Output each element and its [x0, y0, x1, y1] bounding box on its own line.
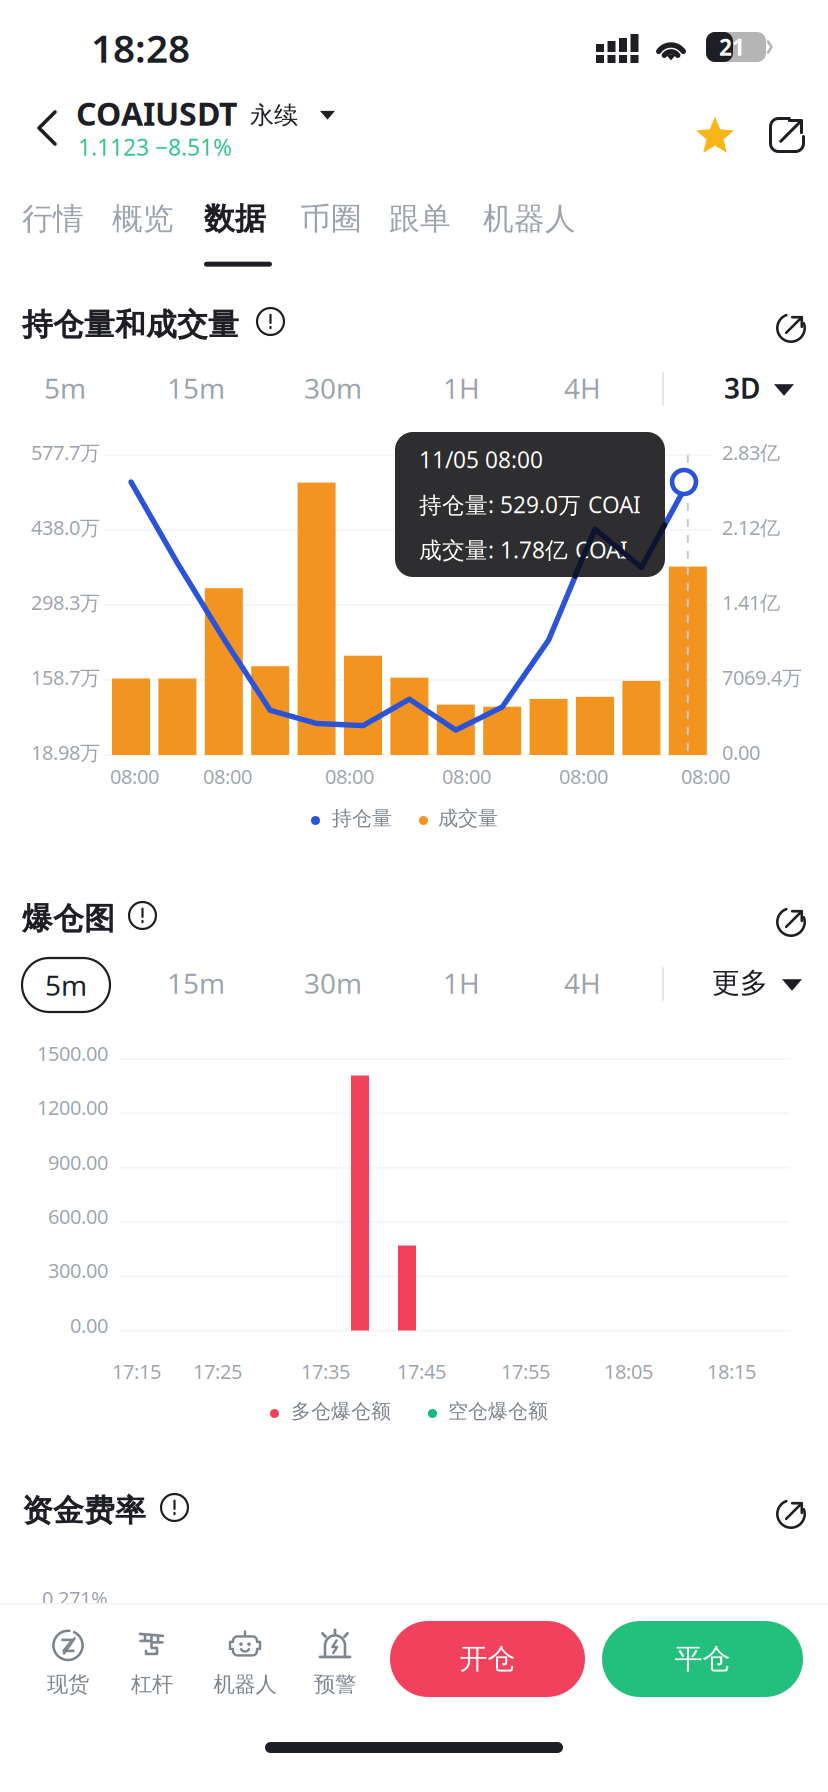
staticText: 08:00 [325, 763, 374, 790]
staticText: 持仓量: 529.0万 COAI [419, 489, 641, 519]
button[interactable]: 1H [431, 962, 523, 1004]
staticText: 0.00 [70, 1312, 108, 1339]
staticText: 08:00 [203, 763, 252, 790]
staticText: 行情 [22, 200, 84, 238]
button[interactable]: 返回 [27, 104, 67, 152]
staticText: 17:45 [397, 1358, 446, 1385]
staticText: COAIUSDT [76, 92, 237, 134]
staticText: 持仓量和成交量 [22, 306, 239, 344]
button[interactable]: 15m [155, 367, 247, 409]
staticText: 18:28 [91, 22, 190, 73]
button[interactable]: 概览 [112, 200, 180, 270]
staticText: 4H [564, 369, 601, 407]
staticText: 概览 [112, 200, 174, 238]
button[interactable]: 预警 [290, 1625, 380, 1701]
staticText: 跟单 [389, 200, 451, 238]
staticText: 成交量: 1.78亿 COAI [419, 535, 628, 565]
button[interactable]: 分享 [766, 114, 808, 156]
staticText: 600.00 [48, 1203, 108, 1230]
staticText: 900.00 [48, 1149, 108, 1176]
staticText: 17:35 [301, 1358, 350, 1385]
button[interactable]: 更多 [712, 962, 802, 1004]
staticText: 1.1123 −8.51% [78, 132, 232, 162]
staticText: 现货 [47, 1671, 89, 1698]
staticText: 5m [45, 966, 87, 1004]
button[interactable]: 币圈 [300, 200, 368, 270]
staticText: 0.271% [42, 1585, 108, 1612]
staticText: 4H [564, 964, 601, 1002]
staticText: 1H [443, 964, 480, 1002]
staticText: 577.7万 [31, 439, 100, 466]
staticText: 438.0万 [31, 514, 100, 541]
staticText: 1200.00 [37, 1094, 108, 1121]
staticText: 15m [167, 369, 225, 407]
staticText: 15m [167, 964, 225, 1002]
button[interactable]: 展开资金费率 [770, 1493, 812, 1535]
staticText: 币圈 [300, 200, 362, 238]
staticText: 3D [724, 369, 760, 407]
staticText: 17:25 [193, 1358, 242, 1385]
button[interactable]: 3D [724, 367, 794, 409]
button[interactable]: 5m [22, 958, 110, 1012]
button[interactable]: 行情 [22, 200, 90, 270]
staticText: 2.83亿 [722, 439, 780, 466]
staticText: 18.98万 [31, 739, 100, 766]
button[interactable]: 4H [552, 367, 644, 409]
staticText: 7069.4万 [722, 664, 802, 691]
staticText: 2.12亿 [722, 514, 780, 541]
staticText: 1.41亿 [722, 589, 780, 616]
staticText: 21 [719, 32, 745, 62]
staticText: 持仓量 [332, 806, 392, 831]
staticText: 17:55 [501, 1358, 550, 1385]
staticText: 0.00 [722, 739, 760, 766]
button[interactable]: 开仓 [390, 1621, 585, 1697]
button[interactable]: 展开持仓量和成交量 [770, 307, 812, 349]
staticText: 杠杆 [131, 1671, 173, 1698]
button[interactable]: 展开爆仓图 [770, 901, 812, 943]
staticText: 机器人 [213, 1671, 276, 1698]
staticText: 永续 [250, 100, 298, 130]
staticText: 08:00 [681, 763, 730, 790]
button[interactable]: 现货 [23, 1625, 113, 1701]
button[interactable]: 30m [292, 962, 384, 1004]
button[interactable]: 收藏 [693, 113, 737, 157]
staticText: 17:15 [112, 1358, 161, 1385]
staticText: 数据 [204, 200, 266, 238]
staticText: 08:00 [559, 763, 608, 790]
staticText: 30m [304, 964, 362, 1002]
button[interactable]: 平仓 [602, 1621, 803, 1697]
staticText: 机器人 [483, 200, 576, 238]
staticText: 爆仓图 [22, 900, 115, 938]
button[interactable]: 机器人 [200, 1625, 290, 1701]
staticText: 11/05 08:00 [419, 444, 543, 474]
staticText: 更多 [712, 966, 768, 1000]
staticText: 298.3万 [31, 589, 100, 616]
staticText: 平仓 [674, 1642, 730, 1676]
staticText: 30m [304, 369, 362, 407]
staticText: 资金费率 [22, 1492, 146, 1530]
button[interactable]: 杠杆 [107, 1625, 197, 1701]
button[interactable]: 数据 [204, 200, 272, 270]
staticText: 1500.00 [37, 1040, 108, 1067]
button[interactable]: 1H [431, 367, 523, 409]
staticText: 5m [44, 369, 86, 407]
button[interactable]: 15m [155, 962, 247, 1004]
staticText: 1H [443, 369, 480, 407]
staticText: 18:05 [604, 1358, 653, 1385]
staticText: 08:00 [110, 763, 159, 790]
button[interactable]: 机器人 [483, 200, 576, 270]
staticText: 158.7万 [31, 664, 100, 691]
button[interactable]: 跟单 [389, 200, 457, 270]
staticText: 开仓 [459, 1642, 515, 1676]
staticText: 预警 [314, 1671, 356, 1698]
staticText: 18:15 [707, 1358, 756, 1385]
staticText: 多仓爆仓额 [291, 1399, 391, 1424]
staticText: 空仓爆仓额 [448, 1399, 548, 1424]
button[interactable]: 4H [552, 962, 644, 1004]
staticText: 08:00 [442, 763, 491, 790]
button[interactable]: 30m [292, 367, 384, 409]
staticText: 300.00 [48, 1257, 108, 1284]
button[interactable]: 5m [32, 367, 124, 409]
staticText: 成交量 [438, 806, 498, 831]
